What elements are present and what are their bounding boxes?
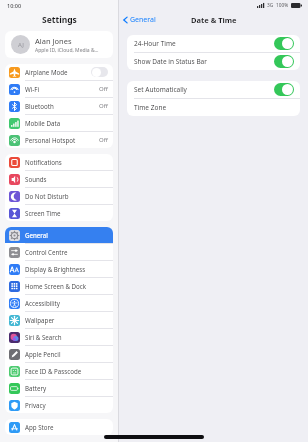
staticText: Notifications <box>25 158 108 166</box>
staticText: Date & Time <box>191 15 237 25</box>
staticText: Sounds <box>25 175 108 183</box>
button[interactable]: Bluetooth <box>5 98 113 114</box>
button[interactable]: Privacy <box>5 397 113 413</box>
staticText: 100% <box>276 2 289 9</box>
button[interactable]: Display & Brightness <box>5 261 113 277</box>
staticText: Personal Hotspot <box>25 136 99 144</box>
staticText: Apple ID, iCloud, Media &… <box>35 47 99 54</box>
staticText: 10:00 <box>7 2 22 9</box>
button[interactable]: Home Screen & Dock <box>5 278 113 294</box>
button[interactable]: Do Not Disturb <box>5 188 113 204</box>
staticText: Off <box>99 85 108 93</box>
button[interactable]: Sounds <box>5 171 113 187</box>
staticText: Wallpaper <box>25 316 108 324</box>
button[interactable]: Control Centre <box>5 244 113 260</box>
staticText: Mobile Data <box>25 119 108 127</box>
button[interactable]: Wallpaper <box>5 312 113 328</box>
staticText: Face ID & Passcode <box>25 367 108 375</box>
staticText: Do Not Disturb <box>25 192 108 200</box>
button[interactable]: Face ID & Passcode <box>5 363 113 379</box>
button[interactable]: Back <box>119 12 161 28</box>
button[interactable]: Screen Time <box>5 205 113 221</box>
button[interactable]: General <box>5 227 113 243</box>
button[interactable]: Notifications <box>5 154 113 170</box>
staticText: Apple Pencil <box>25 350 108 358</box>
button[interactable]: 24-Hour Time toggle <box>274 37 294 50</box>
staticText: Bluetooth <box>25 102 99 110</box>
staticText: Control Centre <box>25 248 108 256</box>
staticText: Off <box>99 102 108 110</box>
button[interactable]: Set Automatically <box>127 81 300 98</box>
button[interactable]: Show Date in Status Bar <box>127 53 300 70</box>
button[interactable]: Accessibility <box>5 295 113 311</box>
staticText: Time Zone <box>134 103 294 112</box>
staticText: Wi-Fi <box>25 85 99 93</box>
staticText: 24-Hour Time <box>134 39 274 48</box>
staticText: Off <box>99 136 108 144</box>
staticText: Home Screen & Dock <box>25 282 108 290</box>
button[interactable]: Time Zone <box>127 99 300 116</box>
button[interactable]: Apple Pencil <box>5 346 113 362</box>
staticText: Siri & Search <box>25 333 108 341</box>
staticText: 3G <box>267 2 274 9</box>
staticText: Display & Brightness <box>25 265 108 273</box>
staticText: Privacy <box>25 401 108 409</box>
staticText: General <box>25 231 108 239</box>
button[interactable]: Personal Hotspot <box>5 132 113 148</box>
other: Back <box>123 16 128 24</box>
button[interactable]: Set Automatically toggle <box>274 83 294 96</box>
button[interactable]: Battery <box>5 380 113 396</box>
staticText: Screen Time <box>25 209 108 217</box>
staticText: AJ <box>18 41 24 49</box>
button[interactable]: Show Date in Status Bar toggle <box>274 55 294 68</box>
staticText: Alan Jones <box>35 36 72 46</box>
button[interactable]: Airplane Mode toggle <box>91 67 108 77</box>
button[interactable]: Siri & Search <box>5 329 113 345</box>
button[interactable]: 24-Hour Time <box>127 35 300 52</box>
button[interactable]: App Store <box>5 419 113 435</box>
staticText: Set Automatically <box>134 85 274 94</box>
staticText: Airplane Mode <box>25 68 91 76</box>
staticText: Show Date in Status Bar <box>134 57 274 66</box>
button[interactable]: Mobile Data <box>5 115 113 131</box>
button[interactable]: Wi-Fi <box>5 81 113 97</box>
staticText: App Store <box>25 423 108 431</box>
staticText: Accessibility <box>25 299 108 307</box>
staticText: Battery <box>25 384 108 392</box>
button[interactable]: Airplane Mode <box>5 64 113 80</box>
staticText: General <box>130 15 156 25</box>
button[interactable]: AJ <box>5 31 113 58</box>
staticText: Settings <box>42 14 77 26</box>
